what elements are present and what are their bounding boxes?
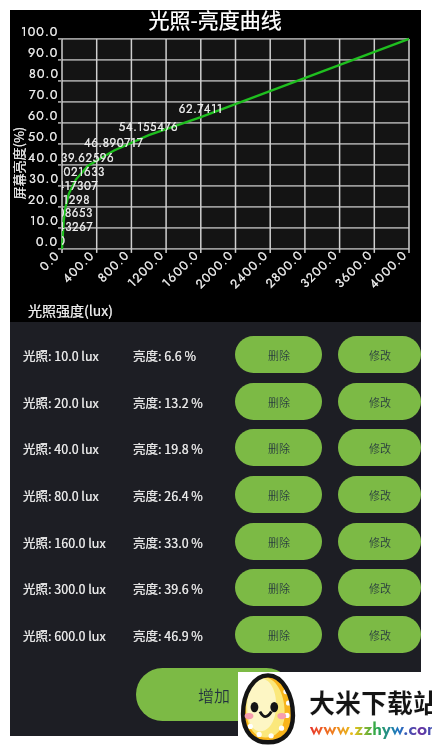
staticText: 修改 <box>369 487 391 503</box>
staticText: 光照: 10.0 lux <box>23 346 99 364</box>
staticText: 删除 <box>268 440 290 456</box>
staticText: 光照: 600.0 lux <box>23 626 106 644</box>
staticText: 删除 <box>268 627 290 643</box>
staticText: 修改 <box>369 347 391 363</box>
button[interactable]: 删除 <box>235 476 322 513</box>
staticText: 亮度: 19.8 % <box>133 439 203 457</box>
staticText: 亮度: 13.2 % <box>133 393 203 411</box>
button[interactable]: 删除 <box>235 523 322 560</box>
staticText: 亮度: 33.0 % <box>133 533 203 551</box>
button[interactable]: 修改 <box>338 336 421 373</box>
button[interactable]: 修改 <box>338 523 421 560</box>
staticText: 大米下载站 <box>309 683 432 721</box>
staticText: 光照: 80.0 lux <box>23 486 99 504</box>
button[interactable]: 删除 <box>235 383 322 420</box>
button[interactable]: 增加 <box>136 668 293 721</box>
button[interactable]: 修改 <box>338 569 421 606</box>
staticText: 亮度: 6.6 % <box>133 346 196 364</box>
button[interactable]: 删除 <box>235 569 322 606</box>
staticText: 增加 <box>198 683 231 706</box>
staticText: 修改 <box>369 580 391 596</box>
staticText: 亮度: 46.9 % <box>133 626 203 644</box>
button[interactable]: 删除 <box>235 616 322 653</box>
staticText: 删除 <box>268 580 290 596</box>
staticText: www.zzhyw.com <box>310 716 432 741</box>
button[interactable]: 删除 <box>235 429 322 466</box>
button[interactable]: 删除 <box>235 336 322 373</box>
staticText: 亮度: 26.4 % <box>133 486 203 504</box>
staticText: 删除 <box>268 487 290 503</box>
staticText: 修改 <box>369 440 391 456</box>
staticText: 删除 <box>268 394 290 410</box>
button[interactable]: 修改 <box>338 429 421 466</box>
staticText: 光照: 300.0 lux <box>23 579 106 597</box>
staticText: 修改 <box>369 627 391 643</box>
button[interactable]: 修改 <box>338 476 421 513</box>
staticText: 删除 <box>268 534 290 550</box>
staticText: 光照: 40.0 lux <box>23 439 99 457</box>
button[interactable]: 修改 <box>338 383 421 420</box>
button[interactable]: 修改 <box>338 616 421 653</box>
staticText: 亮度: 39.6 % <box>133 579 203 597</box>
staticText: 修改 <box>369 534 391 550</box>
staticText: 光照: 20.0 lux <box>23 393 99 411</box>
staticText: 删除 <box>268 347 290 363</box>
staticText: 修改 <box>369 394 391 410</box>
staticText: 光照: 160.0 lux <box>23 533 106 551</box>
